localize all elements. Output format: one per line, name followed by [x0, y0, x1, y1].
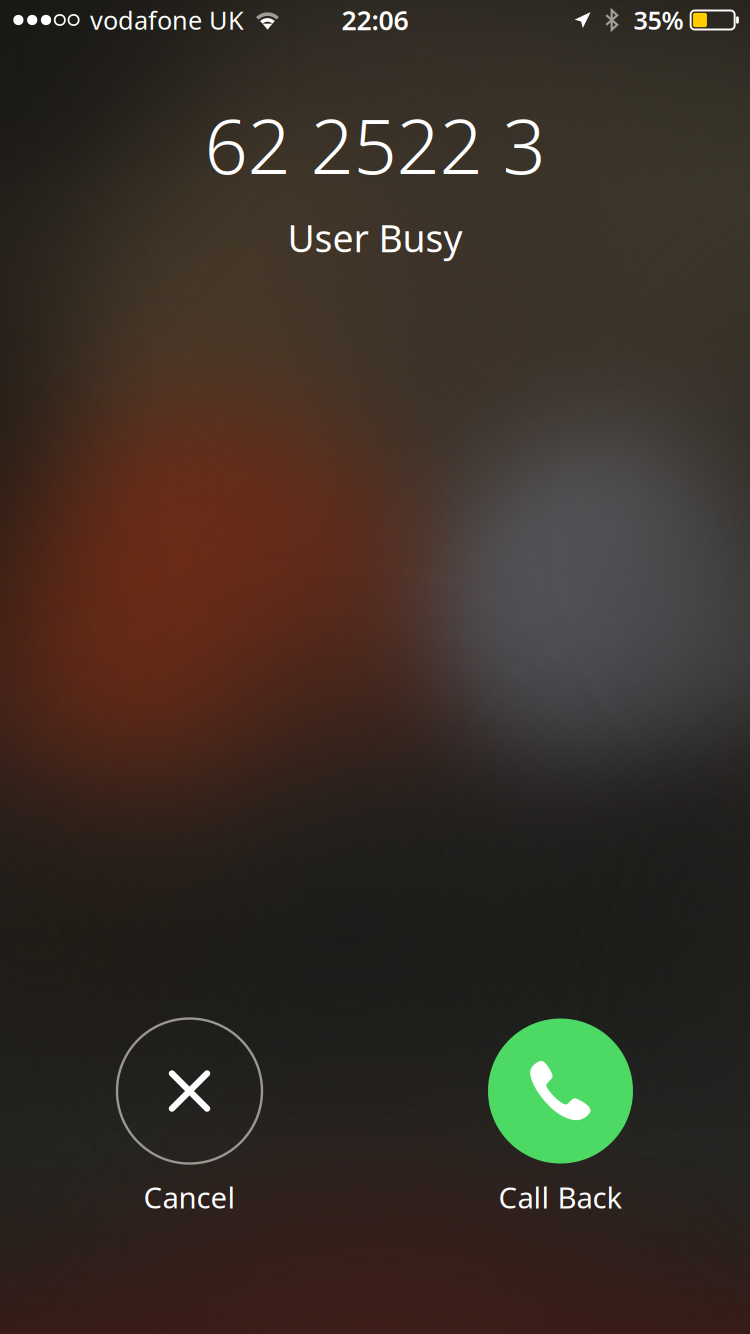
- staticText: Cancel: [143, 1177, 235, 1216]
- button[interactable]: Cancel: [89, 1024, 289, 1211]
- staticText: 62 2522 3: [204, 94, 545, 195]
- staticText: 22:06: [341, 2, 408, 38]
- button[interactable]: Call Back: [460, 1024, 660, 1211]
- staticText: vodafone UK: [90, 3, 244, 37]
- staticText: 35%: [633, 3, 683, 37]
- staticText: User Busy: [287, 213, 462, 262]
- staticText: Call Back: [498, 1177, 622, 1216]
